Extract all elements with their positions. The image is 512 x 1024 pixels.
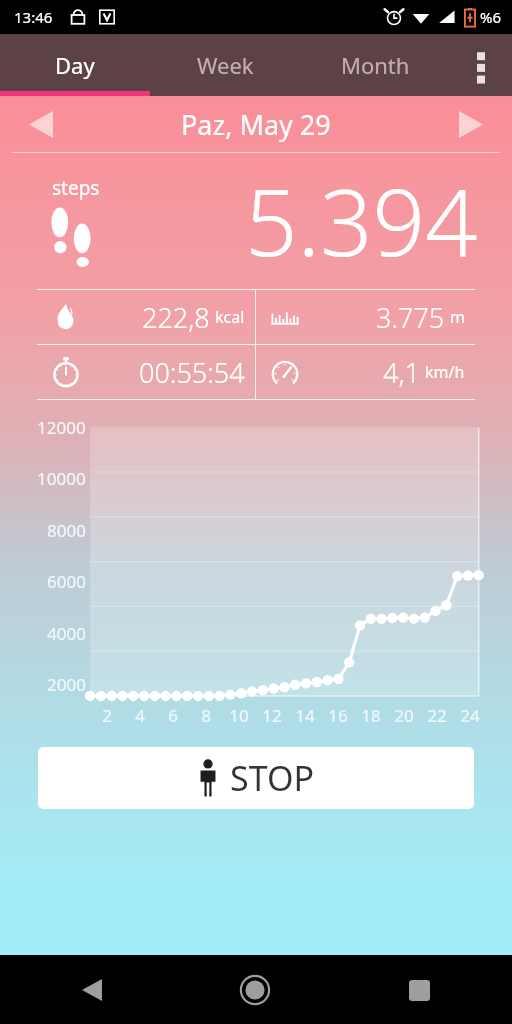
button[interactable]: Day: [0, 34, 150, 96]
button[interactable]: Next day: [448, 101, 494, 147]
staticText: 16: [328, 704, 348, 727]
staticText: 10: [229, 704, 249, 727]
button[interactable]: More options: [450, 34, 512, 96]
staticText: 18: [361, 704, 381, 727]
staticText: m: [450, 306, 465, 328]
staticText: km/h: [425, 361, 465, 383]
button[interactable]: 222,8: [37, 290, 255, 344]
staticText: 3.775: [376, 299, 445, 336]
staticText: 5.394: [245, 158, 478, 283]
staticText: 12: [262, 704, 282, 727]
button[interactable]: Recent apps: [391, 962, 447, 1018]
staticText: 2: [102, 704, 112, 727]
staticText: 12000: [37, 416, 86, 439]
staticText: Month: [341, 50, 410, 80]
staticText: 24: [460, 704, 480, 727]
staticText: 14: [295, 704, 315, 727]
staticText: 8000: [47, 519, 86, 542]
staticText: 20: [394, 704, 414, 727]
button[interactable]: 00:55:54: [37, 345, 255, 399]
staticText: 6: [168, 704, 178, 727]
staticText: 2000: [47, 673, 86, 696]
staticText: 8: [201, 704, 211, 727]
staticText: 10000: [37, 467, 86, 490]
staticText: STOP: [230, 755, 315, 801]
button[interactable]: STOP: [38, 747, 474, 809]
staticText: 22: [427, 704, 447, 727]
staticText: kcal: [215, 306, 245, 328]
button[interactable]: Month: [300, 34, 450, 96]
staticText: Week: [197, 50, 254, 80]
staticText: Paz, May 29: [181, 106, 331, 143]
button[interactable]: Home: [227, 962, 283, 1018]
staticText: %6: [480, 7, 502, 27]
staticText: steps: [52, 175, 100, 201]
button[interactable]: Previous day: [18, 101, 64, 147]
staticText: Day: [55, 50, 95, 80]
button[interactable]: Week: [150, 34, 300, 96]
staticText: 6000: [47, 570, 86, 593]
button[interactable]: 4,1: [256, 345, 475, 399]
button[interactable]: 3.775: [256, 290, 475, 344]
staticText: 222,8: [142, 299, 210, 336]
button[interactable]: Back: [64, 962, 120, 1018]
staticText: 4,1: [383, 354, 420, 391]
staticText: 4: [135, 704, 145, 727]
staticText: 13:46: [14, 7, 53, 27]
staticText: 4000: [47, 622, 86, 645]
staticText: 00:55:54: [139, 354, 245, 391]
